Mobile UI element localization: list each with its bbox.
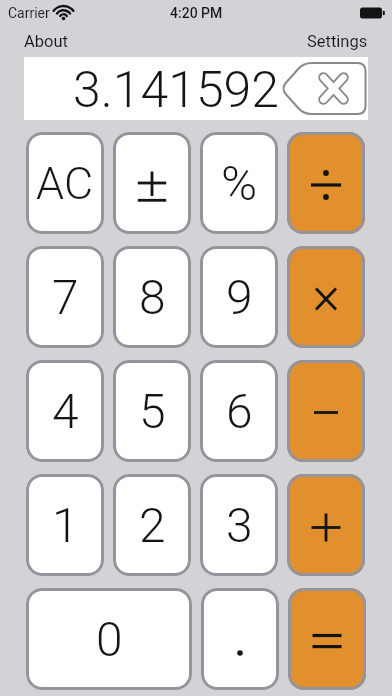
staticText: About xyxy=(24,32,68,51)
button[interactable] xyxy=(288,588,366,690)
button[interactable]: 3 xyxy=(200,474,278,576)
button[interactable]: 9 xyxy=(200,246,278,348)
button[interactable] xyxy=(287,474,365,576)
button[interactable] xyxy=(280,62,368,115)
button[interactable] xyxy=(287,132,365,234)
button[interactable]: 1 xyxy=(26,474,104,576)
staticText: Settings xyxy=(307,32,368,51)
button[interactable]: 4 xyxy=(26,360,104,462)
button[interactable]: 5 xyxy=(113,360,191,462)
button[interactable]: 7 xyxy=(26,246,104,348)
staticText: 3 xyxy=(226,497,253,553)
staticText: 3.141592 xyxy=(73,61,280,120)
staticText: 4 xyxy=(52,383,79,439)
button[interactable]: 2 xyxy=(113,474,191,576)
button[interactable]: 0 xyxy=(26,588,192,690)
button[interactable]: 8 xyxy=(113,246,191,348)
button[interactable] xyxy=(113,132,191,234)
staticText: 5 xyxy=(139,383,166,439)
staticText: 8 xyxy=(139,269,166,325)
staticText: Carrier xyxy=(8,5,50,21)
staticText: 6 xyxy=(226,383,253,439)
staticText: 4:20 PM xyxy=(170,5,223,21)
staticText: 0 xyxy=(96,611,123,667)
staticText: 2 xyxy=(139,497,166,553)
button[interactable]: % xyxy=(200,132,278,234)
staticText: AC xyxy=(36,157,94,210)
button[interactable] xyxy=(287,246,365,348)
staticText: % xyxy=(221,155,258,212)
staticText: 7 xyxy=(52,269,79,325)
button[interactable]: AC xyxy=(26,132,104,234)
button[interactable]: 6 xyxy=(200,360,278,462)
staticText: 1 xyxy=(52,497,79,553)
button[interactable]: About xyxy=(24,32,68,51)
staticText: 9 xyxy=(226,269,253,325)
button[interactable] xyxy=(287,360,365,462)
button[interactable] xyxy=(201,588,279,690)
button[interactable]: Settings xyxy=(307,32,368,51)
